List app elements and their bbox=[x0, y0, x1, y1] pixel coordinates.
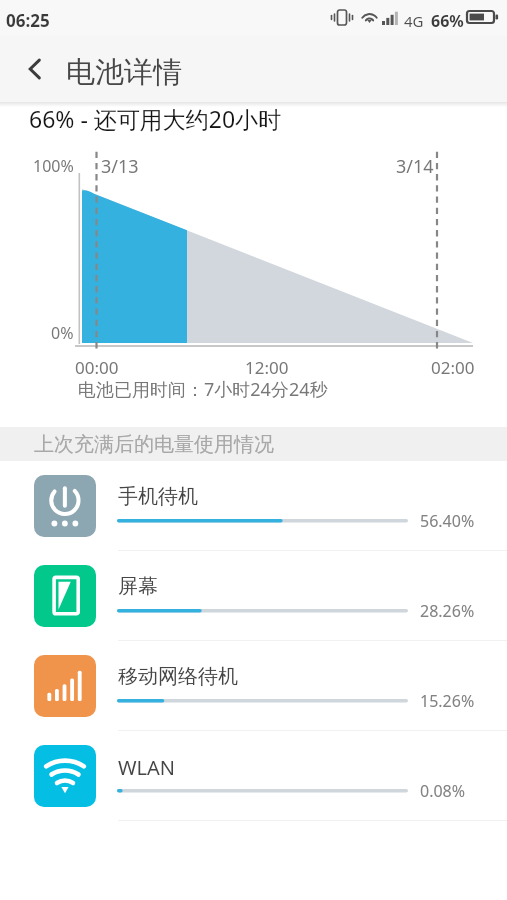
staticText: 电池详情 bbox=[66, 54, 182, 91]
staticText: 00:00 bbox=[75, 356, 119, 379]
staticText: 15.26% bbox=[420, 690, 475, 712]
button[interactable]: 手机待机 bbox=[0, 461, 507, 551]
staticText: 66% - 还可用大约20小时 bbox=[29, 103, 282, 134]
button[interactable]: 移动网络待机 bbox=[0, 641, 507, 731]
staticText: 06:25 bbox=[6, 9, 50, 32]
staticText: 12:00 bbox=[245, 356, 289, 379]
button[interactable]: WLAN bbox=[0, 731, 507, 821]
staticText: 3/14 bbox=[396, 154, 434, 179]
staticText: 100% bbox=[33, 155, 74, 177]
staticText: WLAN bbox=[118, 754, 176, 781]
staticText: 手机待机 bbox=[118, 484, 198, 509]
staticText: 上次充满后的电量使用情况 bbox=[34, 432, 274, 457]
button[interactable]: 屏幕 bbox=[0, 551, 507, 641]
staticText: 0.08% bbox=[420, 780, 466, 802]
staticText: 28.26% bbox=[420, 600, 475, 622]
staticText: 4G bbox=[404, 11, 424, 31]
staticText: 屏幕 bbox=[118, 574, 158, 599]
staticText: 移动网络待机 bbox=[118, 664, 238, 689]
staticText: 0% bbox=[51, 322, 74, 344]
staticText: 56.40% bbox=[420, 510, 475, 532]
staticText: 电池已用时间：7小时24分24秒 bbox=[78, 377, 328, 402]
staticText: 66% bbox=[431, 10, 464, 32]
staticText: 3/13 bbox=[101, 154, 139, 179]
staticText: 02:00 bbox=[431, 356, 475, 379]
button[interactable]: Back bbox=[6, 36, 64, 102]
